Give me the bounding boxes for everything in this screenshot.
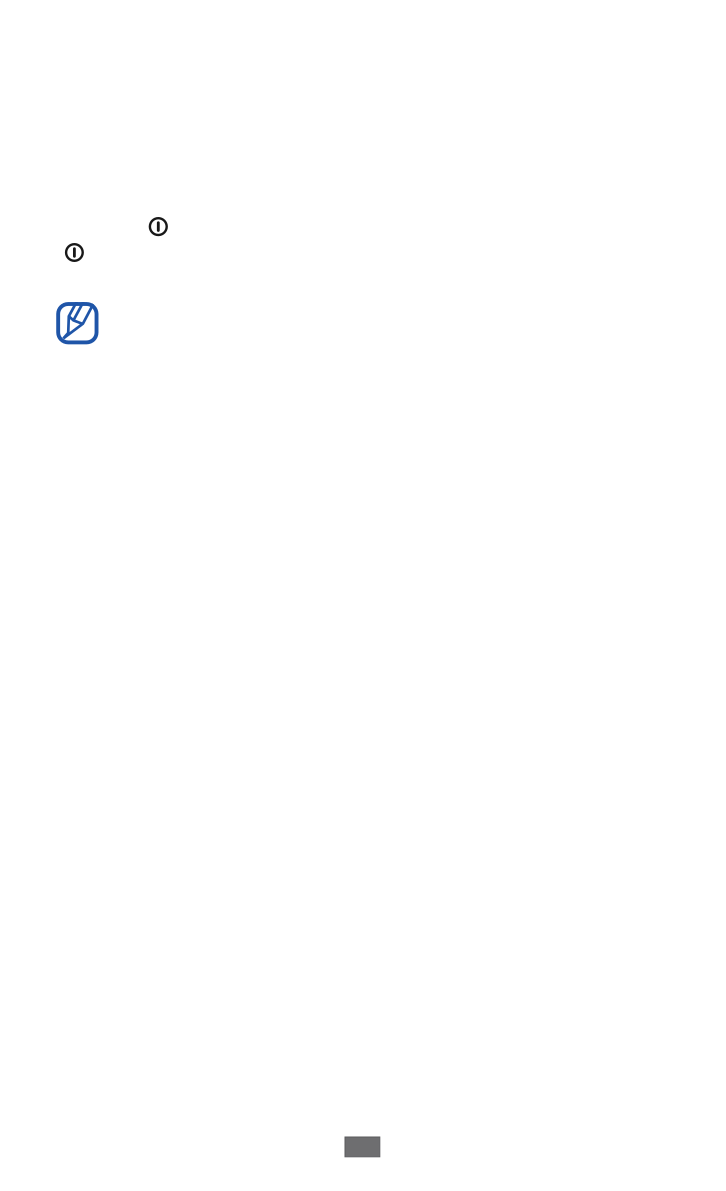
button[interactable]: Note <box>52 298 102 348</box>
button[interactable]: Caution <box>60 238 88 266</box>
button[interactable]: Caution <box>144 213 172 241</box>
